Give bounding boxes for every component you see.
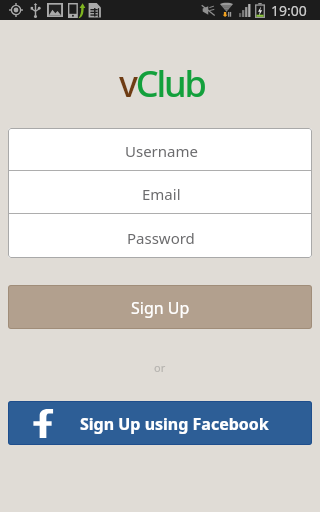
staticText: Sign Up using Facebook: [80, 413, 269, 435]
button[interactable]: Sign Up using Facebook: [8, 401, 312, 445]
staticText: 19:00: [271, 1, 307, 20]
staticText: Email: [142, 184, 181, 204]
staticText: or: [154, 360, 166, 375]
staticText: vClub: [119, 59, 205, 108]
staticText: Password: [127, 228, 195, 248]
button[interactable]: Email: [8, 171, 312, 213]
button[interactable]: Password: [8, 214, 312, 258]
staticText: Username: [125, 141, 198, 161]
button[interactable]: Username: [8, 128, 312, 170]
staticText: Sign Up: [131, 297, 190, 319]
button[interactable]: Sign Up: [8, 285, 312, 329]
